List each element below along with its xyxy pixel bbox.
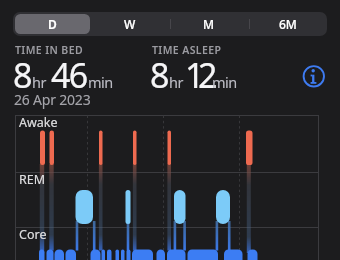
staticText: 2 — [198, 52, 216, 98]
staticText: hr — [32, 72, 46, 92]
staticText: REM — [19, 171, 46, 188]
staticText: TIME IN BED — [15, 43, 84, 57]
staticText: W — [124, 16, 136, 32]
staticText: 6M — [279, 16, 297, 32]
staticText: hr — [169, 72, 183, 92]
button[interactable]: 6M — [248, 12, 327, 36]
staticText: min — [88, 72, 113, 92]
staticText: Awake — [19, 114, 58, 131]
staticText: 8 — [13, 52, 31, 98]
staticText: D — [48, 16, 57, 32]
staticText: 46 — [51, 52, 87, 98]
button[interactable] — [15, 14, 90, 34]
staticText: 26 Apr 2023 — [14, 90, 91, 109]
staticText: 1 — [185, 52, 203, 98]
staticText: 8 — [150, 52, 168, 98]
button[interactable]: W — [91, 12, 169, 36]
staticText: M — [203, 16, 215, 32]
staticText: Core — [19, 226, 47, 243]
button[interactable] — [302, 65, 326, 89]
button[interactable]: D — [13, 12, 91, 36]
staticText: TIME ASLEEP — [152, 43, 222, 57]
staticText: min — [212, 72, 237, 92]
button[interactable]: M — [169, 12, 248, 36]
